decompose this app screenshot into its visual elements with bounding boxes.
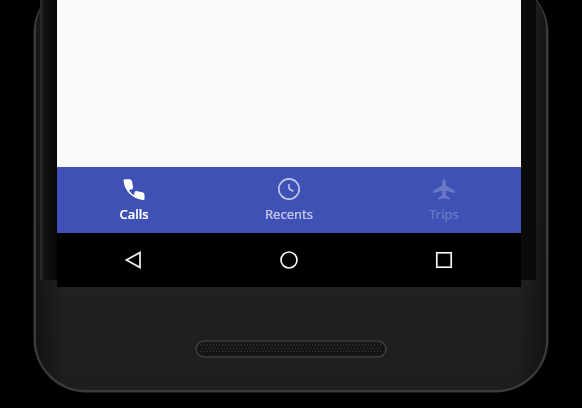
button[interactable]: Back (57, 233, 211, 287)
button[interactable]: Calls (57, 167, 211, 233)
button[interactable]: Recents (211, 167, 366, 233)
button[interactable]: Trips (366, 167, 521, 233)
button[interactable]: Home (211, 233, 366, 287)
staticText: Recents (265, 205, 313, 223)
staticText: Calls (119, 205, 149, 223)
button[interactable]: Recent apps (366, 233, 521, 287)
staticText: Trips (429, 205, 459, 223)
